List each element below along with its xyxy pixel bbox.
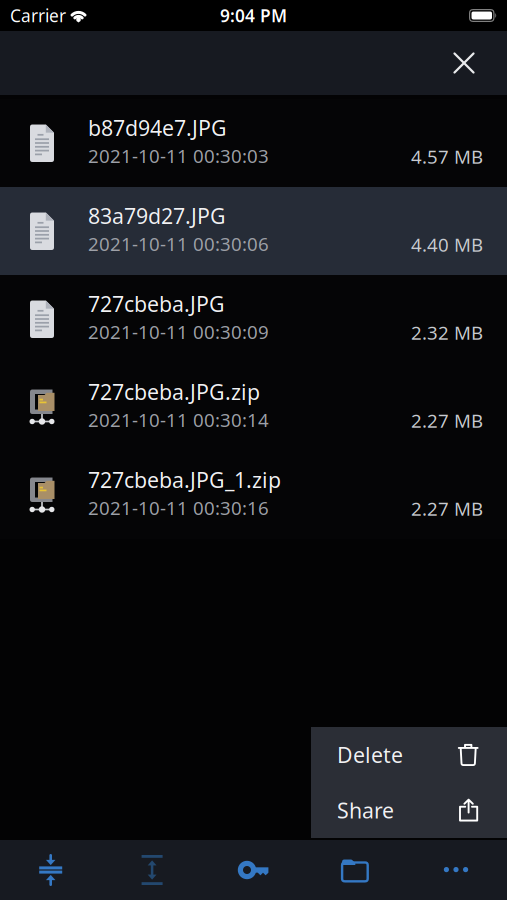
staticText: 4.40 MB [411,232,483,257]
staticText: 2.32 MB [411,320,483,345]
button[interactable]: b87d94e7.JPG [0,99,507,187]
staticText: Share [337,796,394,824]
staticText: 727cbeba.JPG [88,289,225,318]
button[interactable]: Extract [101,840,203,900]
button[interactable]: 727cbeba.JPG_1.zip [0,451,507,539]
staticText: 4.57 MB [411,144,483,169]
staticText: 2021-10-11 00:30:14 [88,407,269,432]
staticText: 2021-10-11 00:30:16 [88,495,269,520]
staticText: 2.27 MB [411,408,483,433]
button[interactable]: Close [453,52,474,73]
staticText: 2.27 MB [411,496,483,521]
staticText: 727cbeba.JPG.zip [88,377,260,406]
button[interactable]: 83a79d27.JPG [0,187,507,275]
button[interactable]: Files [304,840,406,900]
button[interactable]: Delete [311,727,507,782]
staticText: 727cbeba.JPG_1.zip [88,465,281,494]
staticText: 9:04 PM [220,4,287,27]
button[interactable]: 727cbeba.JPG.zip [0,363,507,451]
button[interactable]: Compress [0,840,101,900]
staticText: Delete [337,741,403,769]
staticText: 2021-10-11 00:30:09 [88,319,269,344]
button[interactable]: Share [311,782,507,838]
staticText: Carrier [10,4,66,27]
staticText: 2021-10-11 00:30:03 [88,143,269,168]
staticText: 2021-10-11 00:30:06 [88,231,269,256]
button[interactable]: More [406,840,507,900]
button[interactable]: Password [203,840,304,900]
button[interactable]: 727cbeba.JPG [0,275,507,363]
staticText: b87d94e7.JPG [88,113,227,142]
staticText: 83a79d27.JPG [88,201,226,230]
